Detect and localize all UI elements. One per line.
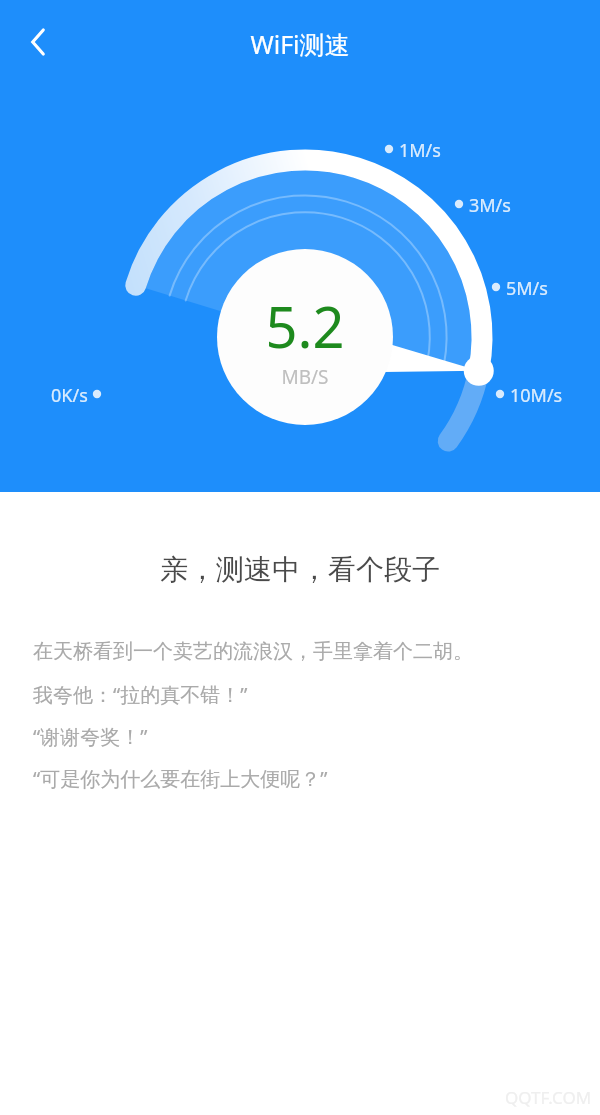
staticText: “谢谢夸奖！” [33, 723, 148, 765]
staticText: 0K/s [51, 383, 88, 408]
staticText: “可是你为什么要在街上大便呢？” [33, 765, 328, 807]
staticText: 5.2 [217, 288, 393, 364]
staticText: 1M/s [399, 138, 441, 163]
staticText: 亲，测速中，看个段子 [0, 552, 600, 587]
button[interactable]: Back [14, 18, 62, 66]
staticText: 3M/s [469, 193, 511, 218]
staticText: 在天桥看到一个卖艺的流浪汉，手里拿着个二胡。 [33, 639, 473, 681]
staticText: 10M/s [510, 383, 563, 408]
staticText: WiFi测速 [0, 27, 600, 61]
staticText: 我夸他：“拉的真不错！” [33, 681, 248, 723]
staticText: QQTF.COM [505, 1086, 592, 1109]
staticText: 5M/s [506, 276, 548, 301]
staticText: MB/S [217, 364, 393, 390]
